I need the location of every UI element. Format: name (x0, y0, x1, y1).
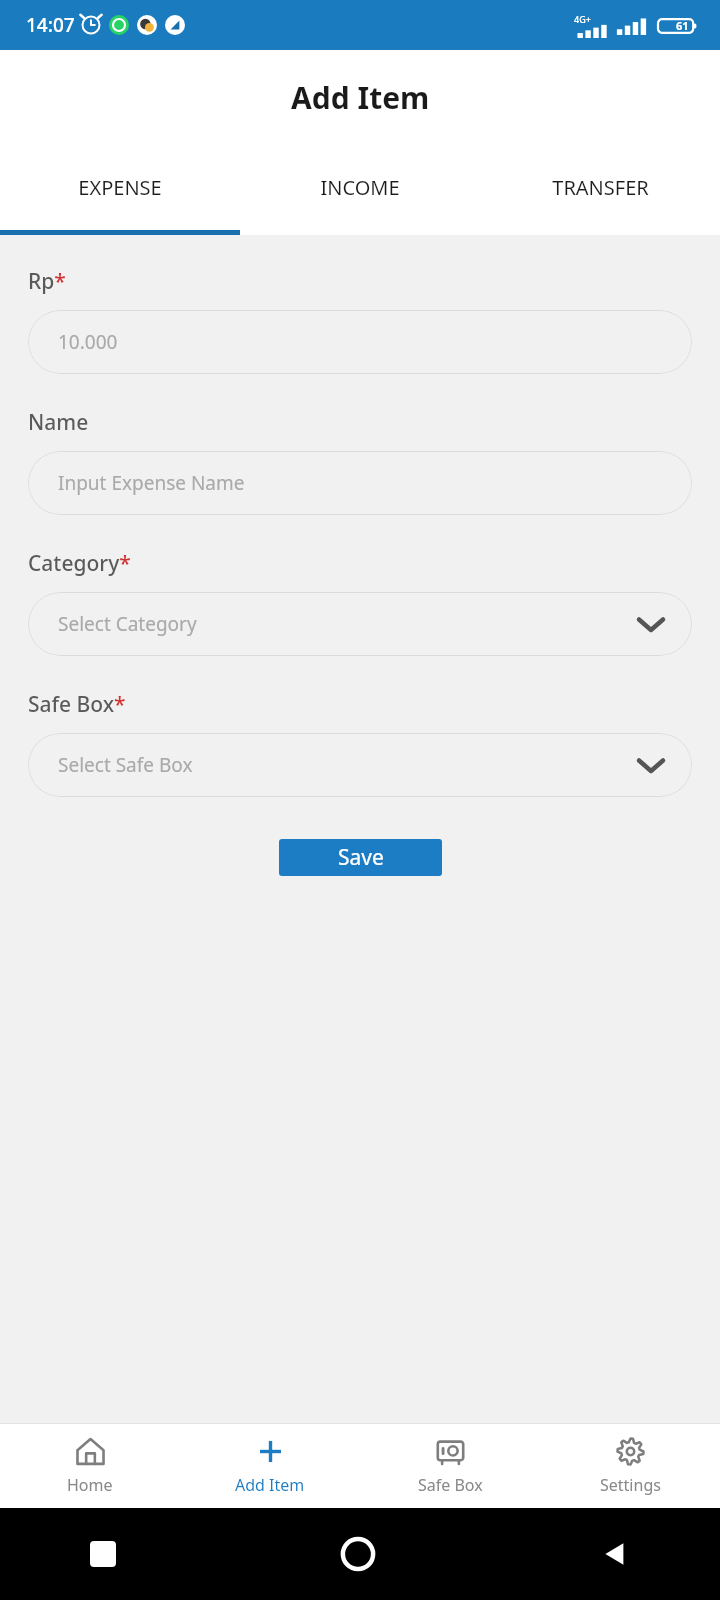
staticText: Save (338, 843, 384, 872)
staticText: Select Category (58, 611, 197, 637)
staticText: 10.000 (58, 329, 118, 355)
button[interactable]: 10.000 (28, 310, 692, 374)
button[interactable]: EXPENSE (0, 145, 240, 230)
button[interactable]: Back (600, 1539, 630, 1569)
button[interactable]: Add Item (180, 1424, 360, 1508)
button[interactable]: Select Safe Box (28, 733, 692, 797)
button[interactable]: Home (340, 1536, 376, 1572)
staticText: Safe Box* (28, 690, 126, 719)
staticText: 4G+ (574, 13, 591, 25)
staticText: Safe Box (418, 1474, 483, 1496)
staticText: Select Safe Box (58, 752, 193, 778)
staticText: EXPENSE (78, 174, 162, 201)
button[interactable]: Select Category (28, 592, 692, 656)
button[interactable]: Safe Box (360, 1424, 540, 1508)
staticText: Category* (28, 549, 131, 578)
button[interactable]: Save (279, 839, 442, 876)
staticText: Add Item (235, 1474, 305, 1496)
staticText: TRANSFER (552, 174, 649, 201)
staticText: Input Expense Name (58, 470, 245, 496)
staticText: Home (67, 1474, 113, 1496)
button[interactable]: INCOME (240, 145, 480, 230)
staticText: 14:07 (26, 12, 75, 38)
staticText: INCOME (320, 174, 400, 201)
staticText: Add Item (291, 77, 430, 118)
staticText: 61 (676, 18, 689, 33)
staticText: Rp* (28, 267, 66, 296)
button[interactable]: Settings (540, 1424, 720, 1508)
staticText: Name (28, 408, 89, 437)
staticText: Settings (600, 1474, 661, 1496)
button[interactable]: Input Expense Name (28, 451, 692, 515)
button[interactable]: Home (0, 1424, 180, 1508)
button[interactable]: TRANSFER (480, 145, 720, 230)
button[interactable]: Recents (90, 1541, 116, 1567)
